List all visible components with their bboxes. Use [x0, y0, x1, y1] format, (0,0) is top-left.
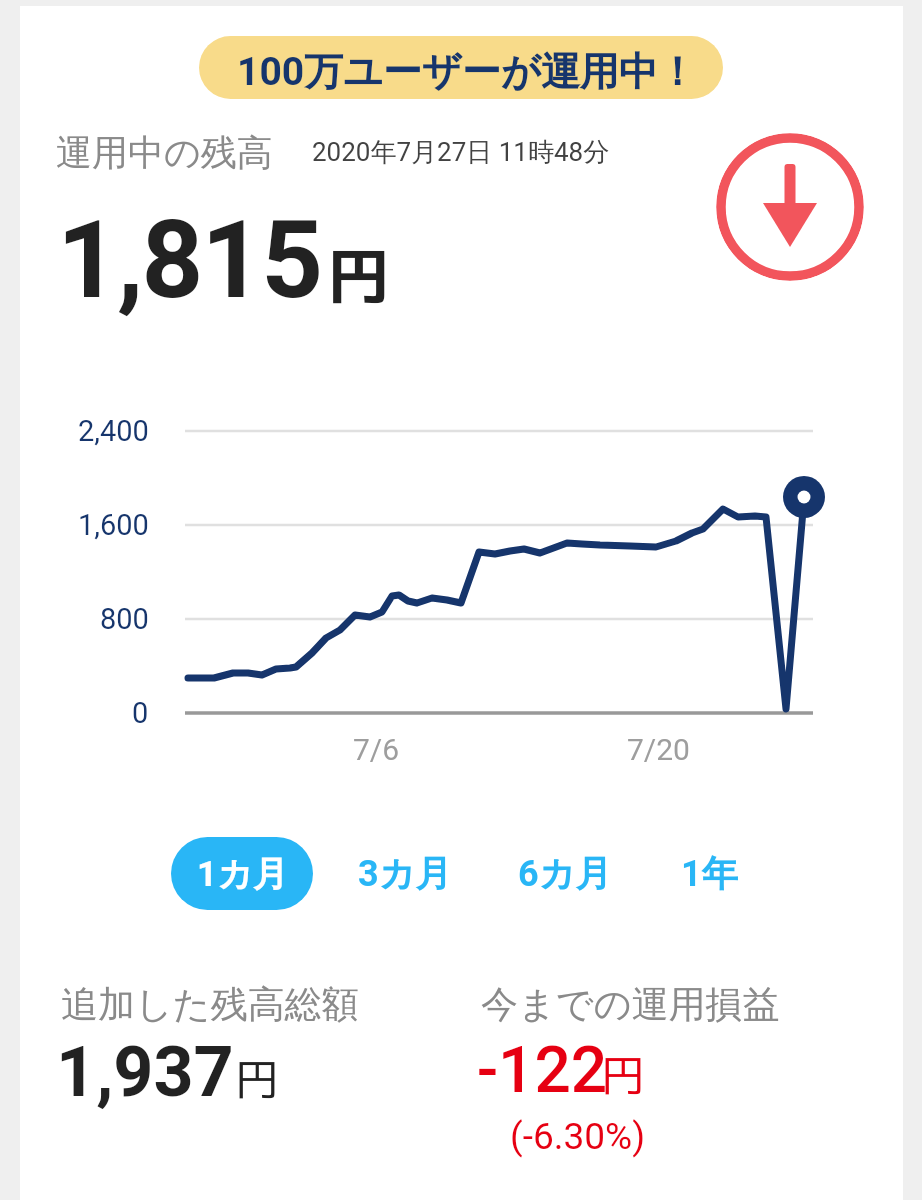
- button[interactable]: [716, 133, 864, 281]
- staticText: 円: [328, 232, 391, 318]
- button[interactable]: 6カ月: [503, 837, 627, 910]
- button[interactable]: 1カ月: [171, 837, 313, 910]
- staticText: 1年: [681, 851, 738, 896]
- button[interactable]: 1年: [656, 837, 762, 910]
- staticText: 7/6: [353, 732, 400, 767]
- staticText: 2020年7月27日 11時48分: [312, 136, 610, 169]
- staticText: 今までの運用損益: [481, 981, 780, 1028]
- button[interactable]: 100万ユーザーが運用中！: [199, 36, 723, 99]
- staticText: 1,937: [56, 1031, 234, 1113]
- staticText: 運用中の残高: [56, 130, 273, 175]
- button[interactable]: 3カ月: [343, 837, 467, 910]
- staticText: 1,815: [57, 197, 322, 324]
- staticText: (-6.30%): [510, 1115, 646, 1158]
- staticText: 3カ月: [358, 851, 452, 896]
- staticText: 0: [132, 696, 149, 730]
- staticText: 円: [235, 1049, 279, 1110]
- staticText: 100万ユーザーが運用中！: [237, 47, 697, 96]
- staticText: 6カ月: [518, 851, 612, 896]
- staticText: 7/20: [627, 732, 690, 767]
- staticText: 800: [100, 602, 149, 636]
- staticText: -122: [477, 1033, 608, 1108]
- staticText: 2,400: [78, 414, 149, 448]
- staticText: 追加した残高総額: [61, 981, 359, 1028]
- staticText: 1,600: [78, 508, 149, 542]
- staticText: 円: [601, 1045, 645, 1106]
- staticText: 1カ月: [197, 852, 288, 896]
